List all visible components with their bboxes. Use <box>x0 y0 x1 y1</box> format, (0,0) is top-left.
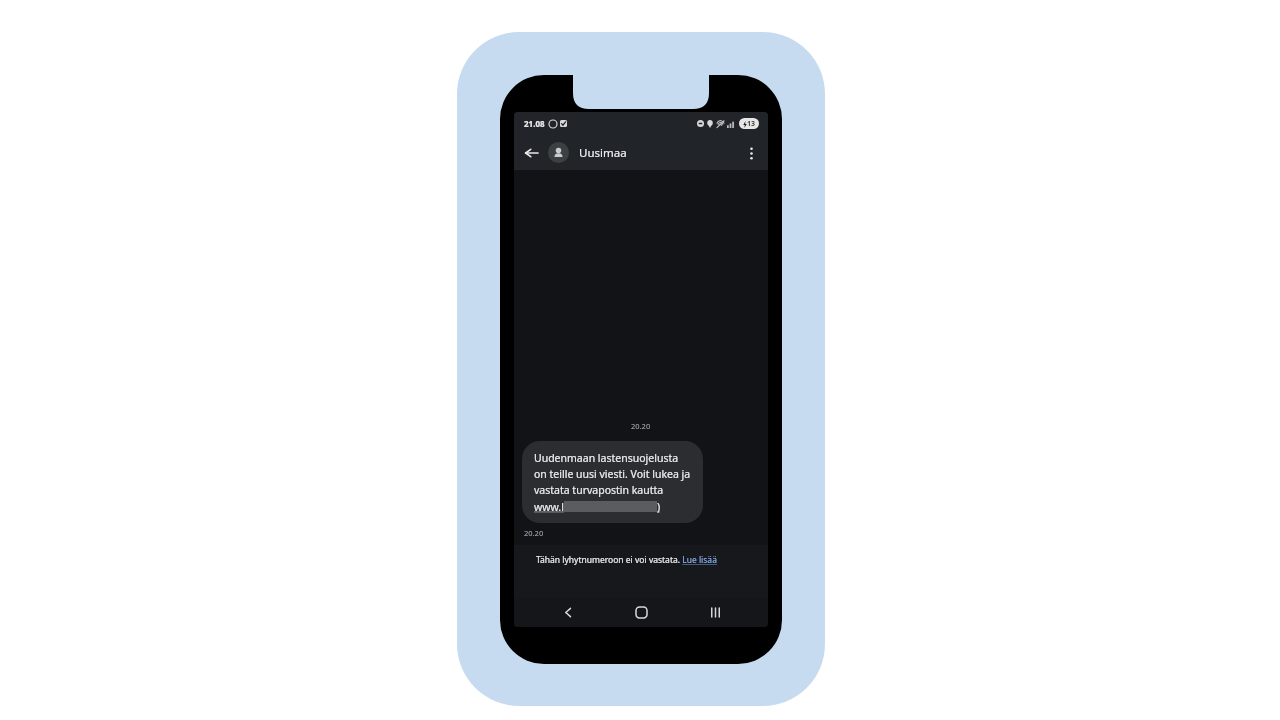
staticText: vastata turvapostin kautta <box>534 483 664 497</box>
button[interactable]: Home <box>621 597 661 627</box>
button[interactable]: Uudenmaan lastensuojelusta <box>522 441 703 523</box>
staticText: www.l <box>534 500 564 514</box>
staticText: 13 <box>747 119 756 129</box>
button[interactable]: Uusimaa <box>548 135 734 170</box>
button[interactable]: More options <box>734 136 768 170</box>
button[interactable]: Recent apps <box>695 597 735 627</box>
staticText: on teille uusi viesti. Voit lukea ja <box>534 467 691 481</box>
staticText: Uusimaa <box>579 145 627 161</box>
button[interactable]: Tähän lyhytnumeroon ei voi vastata. Lue … <box>536 554 746 588</box>
staticText: ) <box>657 500 661 514</box>
button[interactable]: Back <box>514 136 548 170</box>
staticText: 20.20 <box>631 421 651 431</box>
staticText: 21.08 <box>524 118 545 129</box>
staticText: Tähän lyhytnumeroon ei voi vastata. Lue … <box>536 554 717 566</box>
staticText: 20.20 <box>524 528 544 538</box>
button[interactable]: Back <box>548 597 588 627</box>
staticText: Uudenmaan lastensuojelusta <box>534 451 679 465</box>
